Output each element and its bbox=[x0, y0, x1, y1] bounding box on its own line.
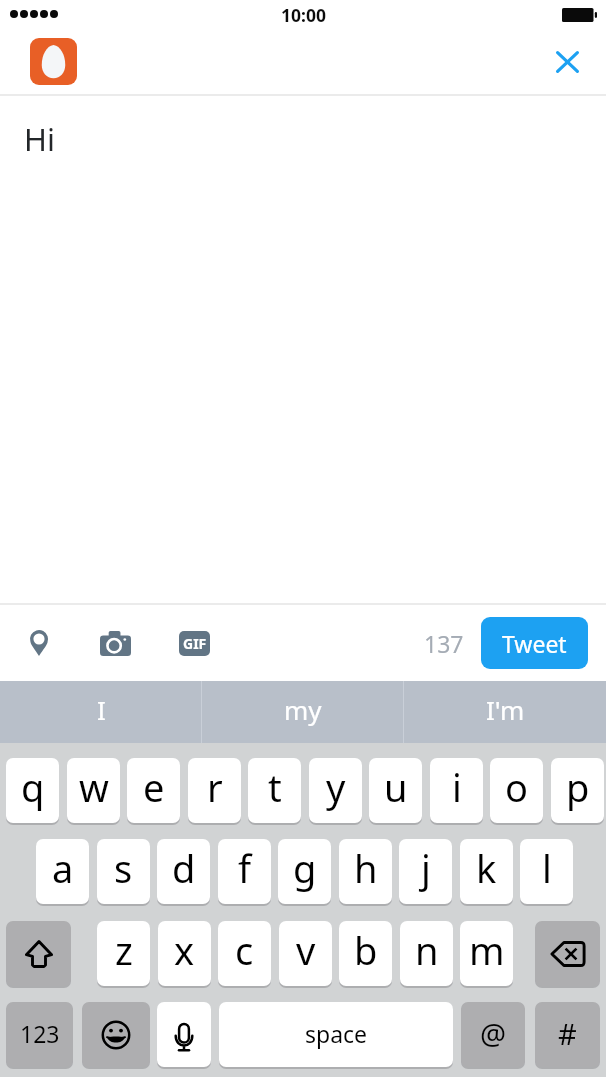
button[interactable]: Emoji bbox=[82, 1002, 150, 1067]
button[interactable]: k bbox=[460, 839, 513, 904]
staticText: d bbox=[172, 842, 196, 894]
button[interactable]: # bbox=[535, 1002, 600, 1067]
staticText: k bbox=[476, 842, 497, 894]
staticText: b bbox=[354, 924, 378, 976]
button[interactable]: Voice input bbox=[157, 1002, 211, 1067]
staticText: g bbox=[293, 842, 317, 894]
button[interactable]: Profile bbox=[30, 38, 77, 85]
button[interactable]: p bbox=[551, 758, 604, 823]
staticText: p bbox=[566, 761, 590, 813]
button[interactable]: f bbox=[218, 839, 271, 904]
button[interactable]: y bbox=[309, 758, 362, 823]
button[interactable]: m bbox=[460, 921, 513, 986]
staticText: z bbox=[115, 924, 133, 976]
staticText: h bbox=[354, 842, 378, 894]
staticText: I'm bbox=[486, 692, 525, 727]
staticText: o bbox=[505, 761, 528, 813]
button[interactable]: q bbox=[6, 758, 59, 823]
button[interactable]: Close bbox=[545, 40, 589, 84]
staticText: 123 bbox=[20, 1018, 60, 1049]
staticText: Tweet bbox=[502, 628, 567, 659]
button[interactable]: Location bbox=[16, 620, 62, 666]
button[interactable]: @ bbox=[461, 1002, 525, 1067]
button[interactable]: 123 bbox=[6, 1002, 73, 1067]
staticText: c bbox=[235, 924, 254, 976]
staticText: # bbox=[558, 1014, 577, 1053]
button[interactable]: my bbox=[202, 681, 404, 743]
staticText: j bbox=[421, 842, 431, 894]
button[interactable]: x bbox=[158, 921, 211, 986]
staticText: x bbox=[174, 924, 195, 976]
button[interactable]: d bbox=[157, 839, 210, 904]
staticText: my bbox=[284, 692, 322, 727]
staticText: space bbox=[305, 1018, 368, 1049]
button[interactable]: I'm bbox=[404, 681, 606, 743]
staticText: @ bbox=[480, 1014, 507, 1053]
button[interactable]: t bbox=[248, 758, 301, 823]
button[interactable]: c bbox=[218, 921, 271, 986]
button[interactable]: g bbox=[278, 839, 331, 904]
staticText: GIF bbox=[183, 634, 207, 653]
button[interactable]: j bbox=[399, 839, 452, 904]
button[interactable]: b bbox=[339, 921, 392, 986]
staticText: i bbox=[452, 761, 462, 813]
staticText: l bbox=[542, 842, 552, 894]
staticText: 137 bbox=[424, 628, 464, 659]
button[interactable]: Tweet bbox=[481, 617, 588, 669]
staticText: I bbox=[97, 692, 106, 727]
button[interactable]: e bbox=[127, 758, 180, 823]
button[interactable]: r bbox=[188, 758, 241, 823]
button[interactable]: o bbox=[490, 758, 543, 823]
button[interactable]: v bbox=[279, 921, 332, 986]
button[interactable]: i bbox=[430, 758, 483, 823]
button[interactable]: w bbox=[67, 758, 120, 823]
button[interactable]: a bbox=[36, 839, 89, 904]
button[interactable]: Shift bbox=[6, 921, 71, 986]
staticText: q bbox=[21, 761, 45, 813]
staticText: w bbox=[79, 761, 109, 813]
button[interactable]: h bbox=[339, 839, 392, 904]
staticText: y bbox=[326, 761, 346, 813]
button[interactable]: Backspace bbox=[535, 921, 600, 986]
staticText: m bbox=[469, 924, 505, 976]
staticText: n bbox=[415, 924, 439, 976]
button[interactable]: u bbox=[369, 758, 422, 823]
button[interactable]: n bbox=[400, 921, 453, 986]
staticText: v bbox=[296, 924, 316, 976]
button[interactable]: s bbox=[97, 839, 150, 904]
staticText: t bbox=[268, 761, 282, 813]
button[interactable]: space bbox=[219, 1002, 453, 1067]
staticText: 10:00 bbox=[281, 3, 326, 27]
staticText: s bbox=[114, 842, 133, 894]
staticText: e bbox=[143, 761, 165, 813]
staticText: u bbox=[384, 761, 408, 813]
button[interactable]: z bbox=[97, 921, 150, 986]
staticText: Hi bbox=[24, 118, 55, 160]
button[interactable]: Camera bbox=[92, 620, 138, 666]
staticText: f bbox=[238, 842, 252, 894]
button[interactable]: l bbox=[520, 839, 573, 904]
button[interactable]: I bbox=[0, 681, 202, 743]
staticText: r bbox=[207, 761, 223, 813]
staticText: a bbox=[52, 842, 74, 894]
button[interactable]: GIF bbox=[171, 620, 217, 666]
